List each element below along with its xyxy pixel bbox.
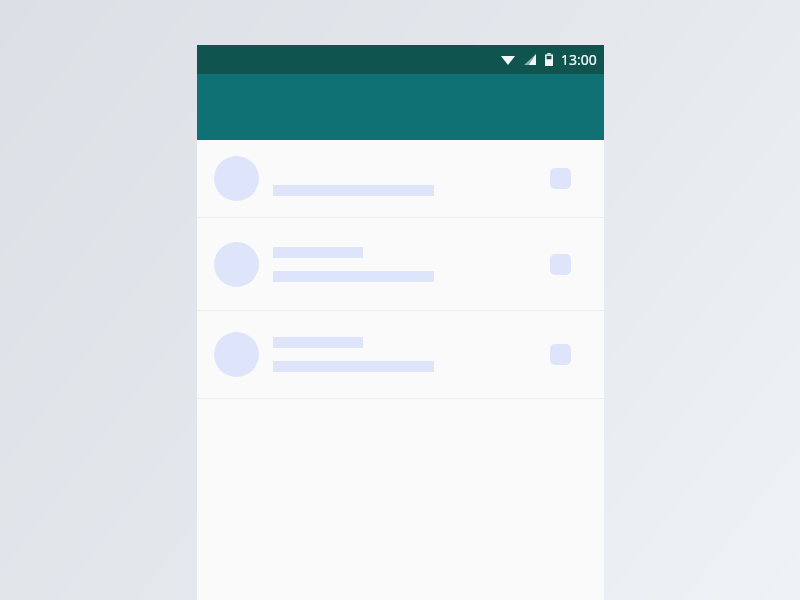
staticText: 13:00	[561, 50, 597, 69]
button[interactable]: More options	[197, 218, 604, 310]
other: Wi-Fi	[501, 54, 515, 65]
button[interactable]: More options	[550, 254, 571, 275]
button[interactable]: More options	[550, 344, 571, 365]
button[interactable]: More options	[550, 168, 571, 189]
other: Battery	[545, 53, 553, 66]
other: Signal	[524, 54, 536, 65]
button[interactable]: More options	[197, 311, 604, 398]
button[interactable]: More options	[197, 140, 604, 217]
